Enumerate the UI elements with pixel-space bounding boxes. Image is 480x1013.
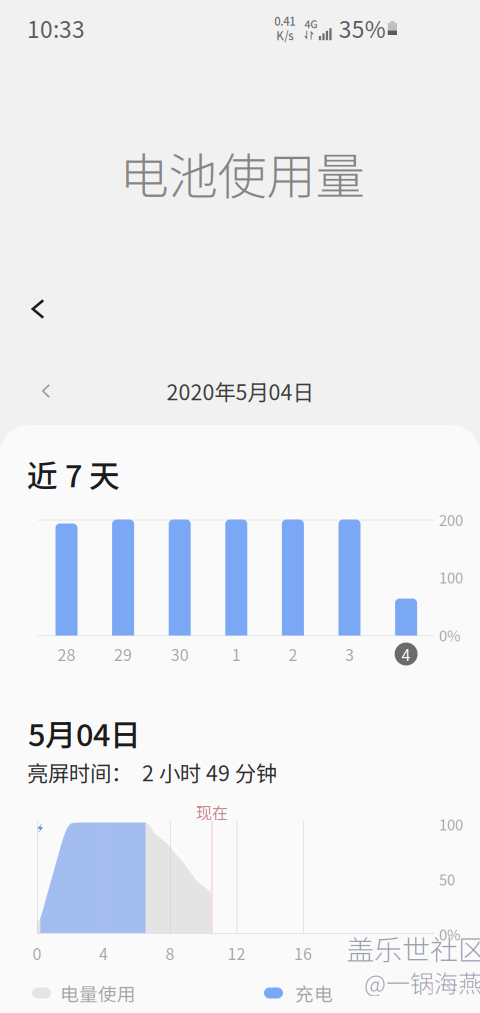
staticText: 充电	[295, 979, 333, 1006]
staticText: 28	[57, 642, 75, 666]
staticText: 0.41	[274, 13, 295, 29]
staticText: 1	[232, 642, 241, 666]
button[interactable]: Previous day	[24, 369, 68, 413]
staticText: 30	[171, 642, 189, 666]
staticText: 4	[402, 642, 411, 666]
staticText: 100	[439, 813, 463, 835]
button[interactable]: 充电	[264, 978, 354, 1008]
staticText: 100	[439, 566, 463, 588]
staticText: 4G	[304, 16, 317, 31]
staticText: 200	[439, 509, 463, 530]
staticText: 3	[345, 642, 354, 666]
staticText: 4	[99, 941, 108, 965]
staticText: 0%	[439, 624, 461, 646]
staticText: 现在	[196, 800, 228, 824]
staticText: 2	[288, 642, 297, 666]
staticText: 亮屏时间： 2 小时 49 分钟	[27, 757, 277, 787]
staticText: 16	[294, 941, 312, 965]
staticText: 2020年5月04日	[166, 376, 313, 406]
staticText: 50	[439, 868, 455, 890]
staticText: 12	[227, 941, 245, 965]
button[interactable]: 电量使用	[32, 978, 152, 1008]
staticText: 10:33	[27, 12, 85, 44]
staticText: 电池使用量	[119, 137, 364, 209]
button[interactable]: Back	[10, 281, 66, 337]
staticText: 35%	[339, 12, 386, 44]
staticText: 0	[32, 941, 41, 965]
staticText: 近 7 天	[27, 452, 120, 496]
staticText: 29	[114, 642, 132, 666]
staticText: 0%	[439, 923, 461, 945]
staticText: 盖乐世社区	[346, 928, 480, 968]
staticText: K/s	[276, 27, 293, 43]
staticText: @一锅海燕	[364, 965, 480, 999]
staticText: 5月04日	[28, 711, 141, 755]
staticText: 电量使用	[60, 979, 136, 1006]
staticText: 8	[165, 941, 174, 965]
